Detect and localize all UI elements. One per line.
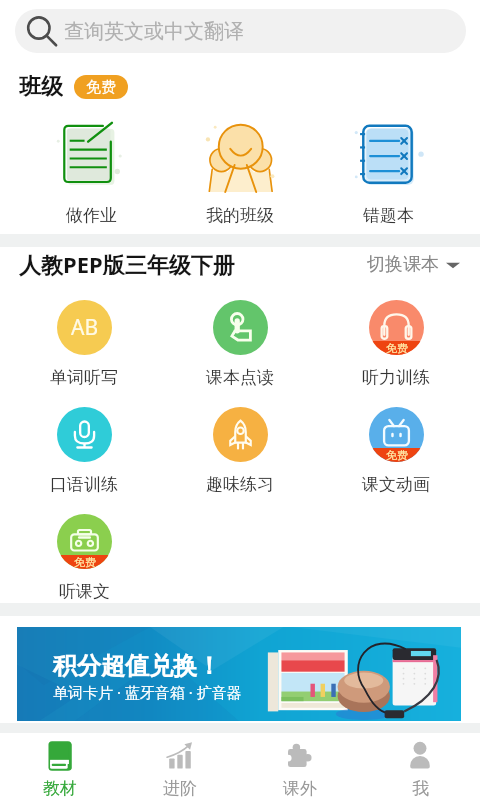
button[interactable]: 趣味练习 (162, 407, 318, 502)
staticText: 班级 (19, 73, 63, 100)
button[interactable]: 教材 (0, 733, 120, 800)
other: 做作业 (55, 120, 127, 192)
staticText: 课文动画 (362, 474, 430, 495)
staticText: 免费 (386, 341, 408, 355)
button[interactable]: 我的班级 (165, 120, 314, 235)
staticText: 错题本 (363, 205, 414, 226)
button[interactable]: 课本点读 (162, 300, 318, 395)
button[interactable]: 错题本 (314, 120, 463, 235)
staticText: 进阶 (163, 778, 197, 799)
button[interactable]: 我 (360, 733, 480, 800)
button[interactable]: 积分超值兑换！ (17, 627, 461, 721)
button[interactable]: 进阶 (120, 733, 240, 800)
staticText: 我的班级 (206, 205, 274, 226)
staticText: 人教PEP版三年级下册 (19, 249, 235, 279)
staticText: 积分超值兑换！ (53, 651, 221, 681)
staticText: 查询英文或中文翻译 (64, 19, 244, 44)
button[interactable]: 课外 (240, 733, 360, 800)
other: 错题本 (353, 120, 425, 192)
staticText: 切换课本 (367, 253, 439, 276)
other: 教材 (44, 740, 76, 772)
staticText: 我 (412, 778, 429, 799)
staticText: 免费 (74, 555, 96, 569)
staticText: 免费 (386, 448, 408, 462)
button[interactable]: 免费 (318, 407, 474, 502)
staticText: 单词听写 (50, 367, 118, 388)
button[interactable]: 免费 (318, 300, 474, 395)
other: 我 (405, 741, 435, 771)
button[interactable]: 搜索 (15, 9, 466, 53)
staticText: 做作业 (66, 205, 117, 226)
button[interactable]: 免费 (6, 514, 162, 609)
staticText: AB (71, 313, 99, 342)
button[interactable]: 做作业 (17, 120, 165, 235)
other: 搜索 (27, 16, 57, 46)
staticText: 口语训练 (50, 474, 118, 495)
button[interactable]: AB (6, 300, 162, 395)
staticText: 课本点读 (206, 367, 274, 388)
other: 我的班级 (204, 120, 276, 192)
staticText: 听课文 (59, 581, 110, 602)
staticText: 免费 (86, 78, 116, 97)
button[interactable]: 切换课本 (365, 249, 462, 280)
button[interactable]: 口语训练 (6, 407, 162, 502)
staticText: 听力训练 (362, 367, 430, 388)
other: 课外 (285, 741, 315, 771)
staticText: 趣味练习 (206, 474, 274, 495)
staticText: 课外 (283, 778, 317, 799)
staticText: 教材 (43, 778, 77, 799)
staticText: 单词卡片 · 蓝牙音箱 · 扩音器 (53, 682, 242, 702)
button[interactable]: 班级 (19, 73, 128, 100)
other: 进阶 (165, 741, 195, 771)
